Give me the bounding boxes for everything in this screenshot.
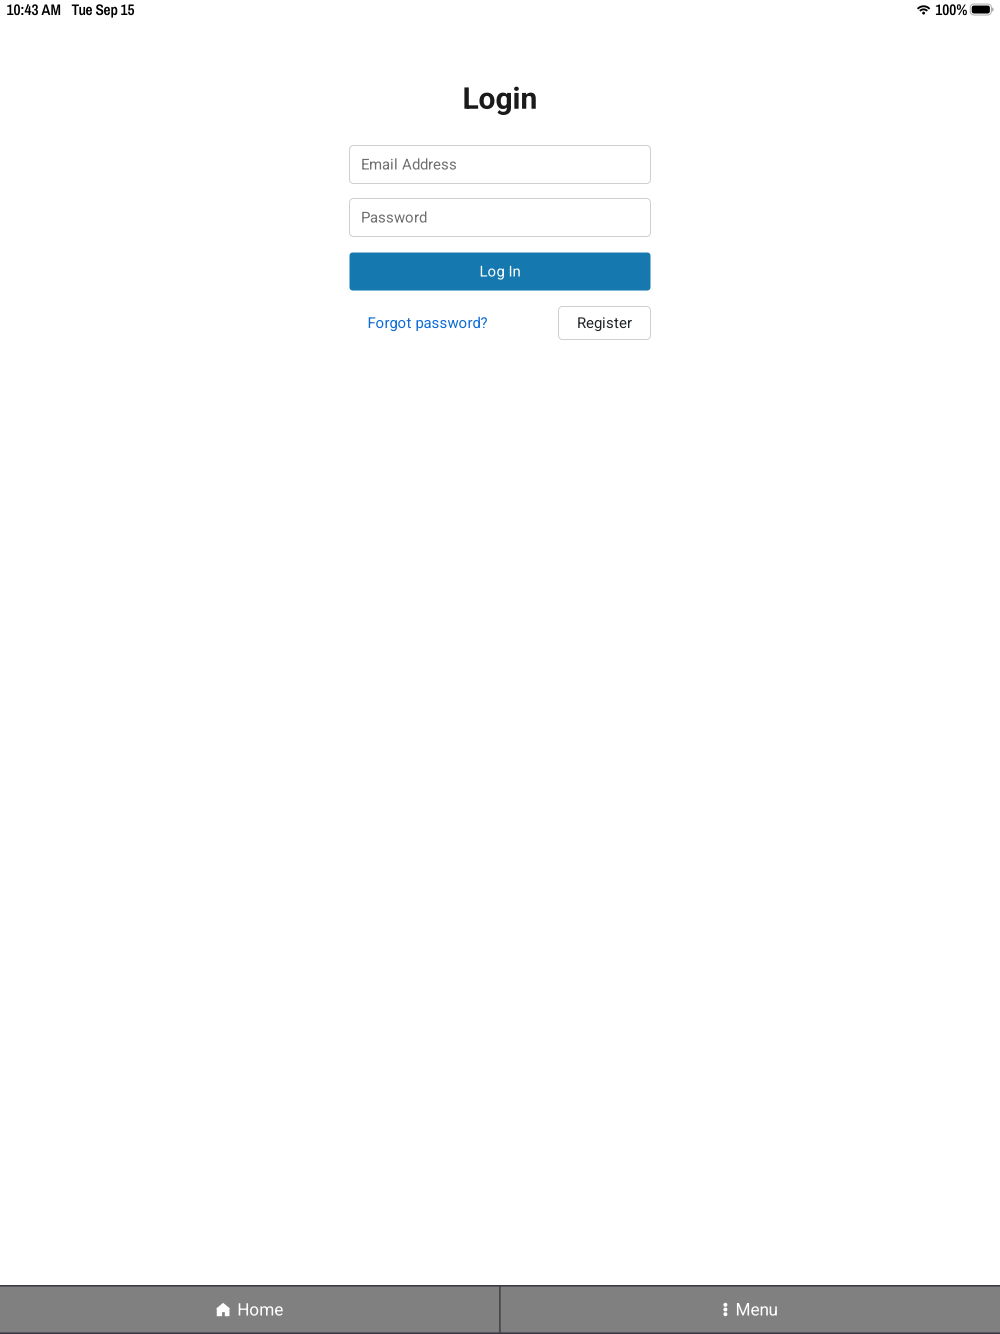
button[interactable]: Register — [558, 306, 650, 339]
staticText: Log In — [479, 263, 520, 280]
staticText: Email Address — [361, 156, 457, 173]
staticText: Login — [462, 81, 537, 116]
staticText: 10:43 AM — [6, 0, 60, 20]
staticText: Register — [577, 314, 632, 332]
button[interactable]: Home — [0, 1285, 499, 1334]
staticText: Password — [361, 209, 427, 226]
staticText: Menu — [735, 1299, 777, 1320]
staticText: Forgot password? — [367, 314, 487, 332]
button[interactable]: Forgot password? — [349, 306, 487, 339]
staticText: Home — [237, 1299, 283, 1320]
button[interactable]: Log In — [349, 252, 650, 290]
button[interactable]: Menu — [501, 1285, 1000, 1334]
staticText: Tue Sep 15 — [71, 0, 134, 20]
staticText: 100% — [935, 0, 967, 20]
